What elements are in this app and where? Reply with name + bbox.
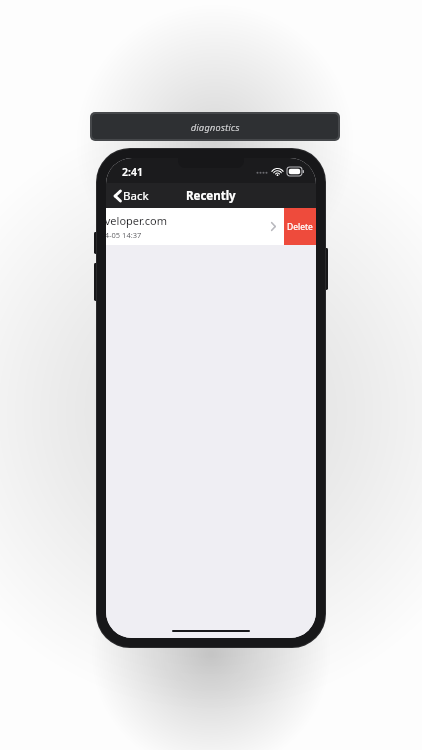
staticText: 2:41 — [122, 165, 143, 179]
button[interactable]: developer.com — [106, 208, 284, 245]
other: Home — [172, 630, 250, 632]
staticText: Recently — [186, 188, 236, 204]
staticText: 2024-05 14:37 — [106, 230, 142, 240]
staticText: Back — [123, 188, 149, 204]
staticText: diagnostics — [191, 121, 240, 133]
button[interactable]: Back — [106, 183, 157, 208]
button[interactable]: Delete — [284, 208, 316, 245]
staticText: Delete — [287, 221, 313, 233]
staticText: developer.com — [106, 213, 167, 228]
button[interactable]: diagnostics — [92, 114, 338, 139]
